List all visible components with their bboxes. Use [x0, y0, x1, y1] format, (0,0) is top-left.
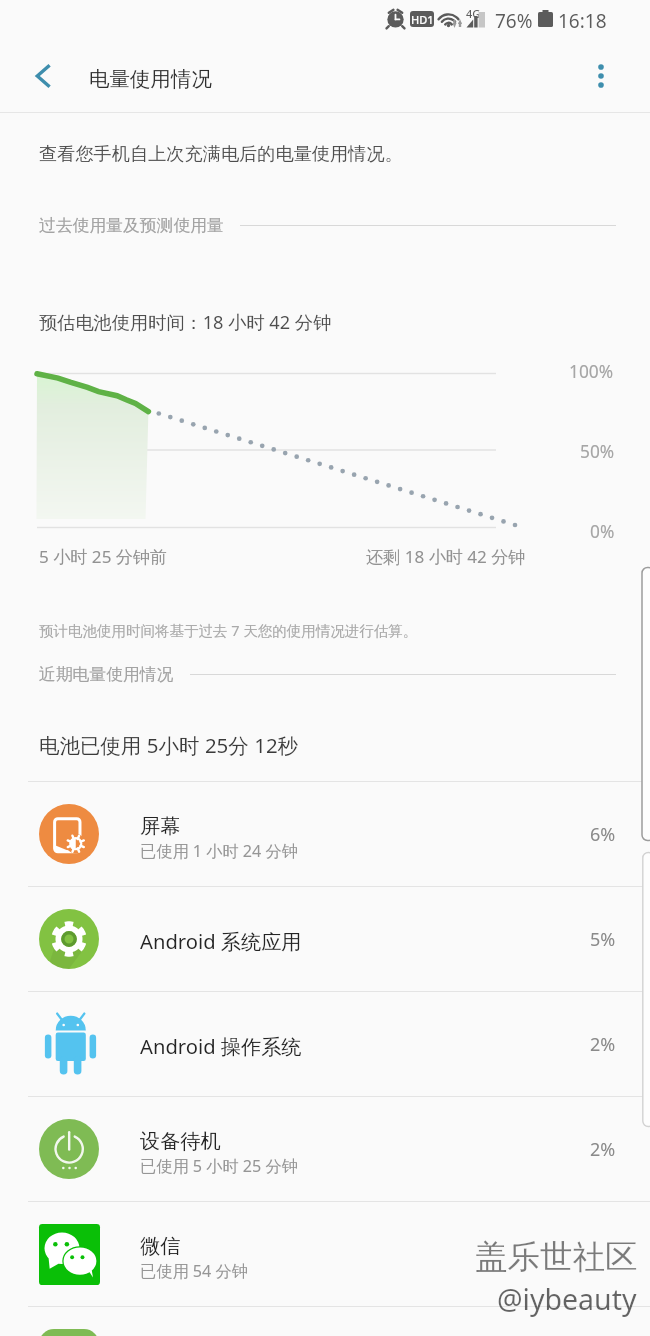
staticText: 预计电池使用时间将基于过去 7 天您的使用情况进行估算。	[39, 620, 418, 640]
staticText: 已使用 54 分钟	[140, 1260, 248, 1282]
staticText: 电量使用情况	[89, 66, 212, 92]
staticText: 近期电量使用情况	[39, 664, 174, 685]
button[interactable]: 微信	[0, 1202, 650, 1306]
staticText: 76%	[495, 8, 533, 34]
staticText: 预估电池使用时间：18 小时 42 分钟	[39, 310, 332, 335]
staticText: 设备待机	[140, 1129, 221, 1154]
staticText: 6%	[590, 822, 616, 847]
staticText: 16:18	[558, 8, 607, 34]
staticText: 5%	[590, 927, 616, 952]
staticText: 5 小时 25 分钟前	[39, 545, 168, 568]
staticText: 查看您手机自上次充满电后的电量使用情况。	[39, 142, 403, 165]
staticText: 微信	[140, 1234, 181, 1259]
staticText: 100%	[569, 360, 614, 384]
staticText: Android 操作系统	[140, 1032, 302, 1060]
button[interactable]: Back	[18, 48, 74, 104]
staticText: 0%	[590, 520, 615, 544]
staticText: 屏幕	[140, 814, 181, 839]
button[interactable]: Android 操作系统	[0, 992, 650, 1096]
staticText: 已使用 1 小时 24 分钟	[140, 840, 298, 862]
staticText: 盖乐世社区	[475, 1237, 638, 1278]
staticText: 过去使用量及预测使用量	[39, 215, 224, 236]
button[interactable]: 屏幕	[0, 782, 650, 886]
staticText: 还剩 18 小时 42 分钟	[366, 545, 526, 568]
staticText: 4G	[466, 6, 481, 21]
staticText: HD1	[411, 12, 434, 27]
staticText: 已使用 5 小时 25 分钟	[140, 1155, 298, 1177]
staticText: @iybeauty	[497, 1280, 637, 1319]
staticText: 50%	[580, 440, 615, 464]
staticText: 2%	[590, 1032, 616, 1057]
staticText: 2%	[590, 1137, 616, 1162]
button[interactable]: Android 系统应用	[0, 887, 650, 991]
button[interactable]: More options	[573, 48, 629, 104]
staticText: 电池已使用 5小时 25分 12秒	[39, 731, 299, 759]
staticText: Android 系统应用	[140, 927, 302, 955]
button[interactable]: 设备待机	[0, 1097, 650, 1201]
